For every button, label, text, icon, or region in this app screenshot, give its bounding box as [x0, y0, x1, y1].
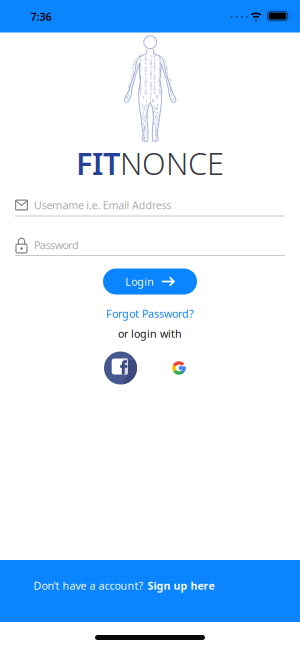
- staticText: 1: [149, 94, 151, 100]
- staticText: 0: [143, 128, 145, 133]
- staticText: 0: [156, 106, 158, 111]
- staticText: 7:36: [30, 9, 51, 24]
- staticText: 1: [142, 121, 144, 127]
- staticText: 1: [150, 80, 152, 85]
- staticText: 1: [170, 85, 172, 91]
- staticText: 0: [150, 72, 152, 77]
- staticText: 1: [159, 83, 161, 89]
- staticText: 1: [153, 69, 155, 74]
- staticText: 1: [152, 104, 154, 109]
- button[interactable]: Login with Google: [168, 357, 190, 379]
- staticText: 1: [159, 88, 161, 93]
- staticText: 1: [139, 62, 141, 67]
- staticText: Username i.e. Email Address: [34, 198, 171, 212]
- staticText: 1: [139, 73, 141, 78]
- staticText: 1: [127, 92, 129, 97]
- staticText: 0: [144, 90, 146, 96]
- staticText: 0: [139, 75, 141, 81]
- staticText: 1: [150, 69, 152, 74]
- staticText: 1: [141, 113, 143, 119]
- staticText: 1: [150, 65, 152, 70]
- staticText: 1: [156, 103, 158, 108]
- staticText: NONCE: [120, 143, 224, 183]
- staticText: 1: [134, 59, 136, 64]
- staticText: 1: [144, 133, 146, 138]
- staticText: 1: [144, 65, 146, 71]
- staticText: 0: [128, 84, 130, 89]
- button[interactable]: Password: [15, 234, 285, 256]
- staticText: 1: [139, 84, 141, 89]
- staticText: 1: [143, 124, 145, 130]
- staticText: Sign up here: [147, 578, 214, 593]
- staticText: 1: [159, 61, 161, 66]
- staticText: 0: [150, 61, 152, 66]
- staticText: 1: [144, 108, 146, 113]
- button[interactable]: Username i.e. Email Address: [15, 194, 285, 216]
- staticText: 1: [159, 54, 161, 60]
- staticText: or login with: [118, 326, 182, 341]
- staticText: Login: [125, 274, 154, 289]
- staticText: 1: [155, 125, 157, 130]
- button[interactable]: Login: [103, 268, 197, 294]
- staticText: 1: [142, 132, 144, 138]
- button[interactable]: Forgot Password?: [106, 306, 194, 321]
- staticText: FIT: [76, 143, 120, 183]
- staticText: 0: [145, 114, 147, 119]
- staticText: Password: [34, 238, 79, 252]
- staticText: 1: [153, 84, 155, 89]
- staticText: 0: [155, 132, 157, 138]
- staticText: 1: [149, 98, 151, 103]
- staticText: 0: [139, 53, 141, 59]
- staticText: 1: [154, 118, 156, 123]
- button[interactable]: Login with Facebook: [104, 351, 137, 384]
- staticText: 1: [142, 95, 144, 100]
- staticText: 1: [129, 81, 131, 86]
- staticText: 1: [132, 66, 134, 71]
- staticText: 1: [145, 122, 147, 127]
- staticText: 0: [142, 105, 144, 111]
- staticText: 1: [154, 115, 156, 120]
- staticText: 1: [153, 62, 155, 67]
- staticText: 0: [142, 117, 144, 122]
- staticText: 1: [145, 99, 147, 104]
- staticText: 1: [132, 70, 134, 75]
- staticText: 1: [150, 87, 152, 92]
- staticText: 0: [159, 90, 161, 96]
- staticText: 1: [144, 61, 146, 66]
- staticText: 1: [154, 137, 156, 142]
- staticText: 1: [150, 76, 152, 81]
- staticText: 1: [153, 91, 155, 96]
- staticText: Forgot Password?: [106, 306, 194, 321]
- staticText: 1: [150, 58, 152, 63]
- button[interactable]: Don't have a account?: [0, 560, 300, 622]
- staticText: 0: [159, 68, 161, 73]
- staticText: 1: [153, 57, 155, 63]
- staticText: 1: [144, 76, 146, 82]
- staticText: 1: [128, 88, 130, 93]
- staticText: 1: [170, 92, 172, 98]
- staticText: 0: [139, 87, 141, 92]
- staticText: 1: [144, 119, 146, 124]
- staticText: 0: [153, 87, 155, 92]
- staticText: 1: [166, 70, 168, 75]
- staticText: 1: [141, 102, 143, 108]
- staticText: 1: [139, 80, 141, 85]
- staticText: 1: [144, 83, 146, 89]
- staticText: 1: [139, 91, 141, 96]
- staticText: 0: [143, 136, 145, 142]
- staticText: 0: [145, 103, 147, 108]
- staticText: 1: [143, 136, 145, 141]
- staticText: 0: [153, 64, 155, 70]
- staticText: 1: [144, 54, 146, 60]
- staticText: 0: [139, 64, 141, 70]
- staticText: 1: [130, 77, 132, 82]
- staticText: 1: [155, 133, 157, 138]
- staticText: 0: [156, 128, 158, 133]
- staticText: 1: [154, 126, 156, 131]
- staticText: 1: [142, 110, 144, 115]
- staticText: 1: [139, 57, 141, 63]
- staticText: 0: [159, 57, 161, 62]
- staticText: 0: [133, 61, 135, 67]
- staticText: 1: [173, 97, 175, 102]
- staticText: 0: [156, 117, 158, 122]
